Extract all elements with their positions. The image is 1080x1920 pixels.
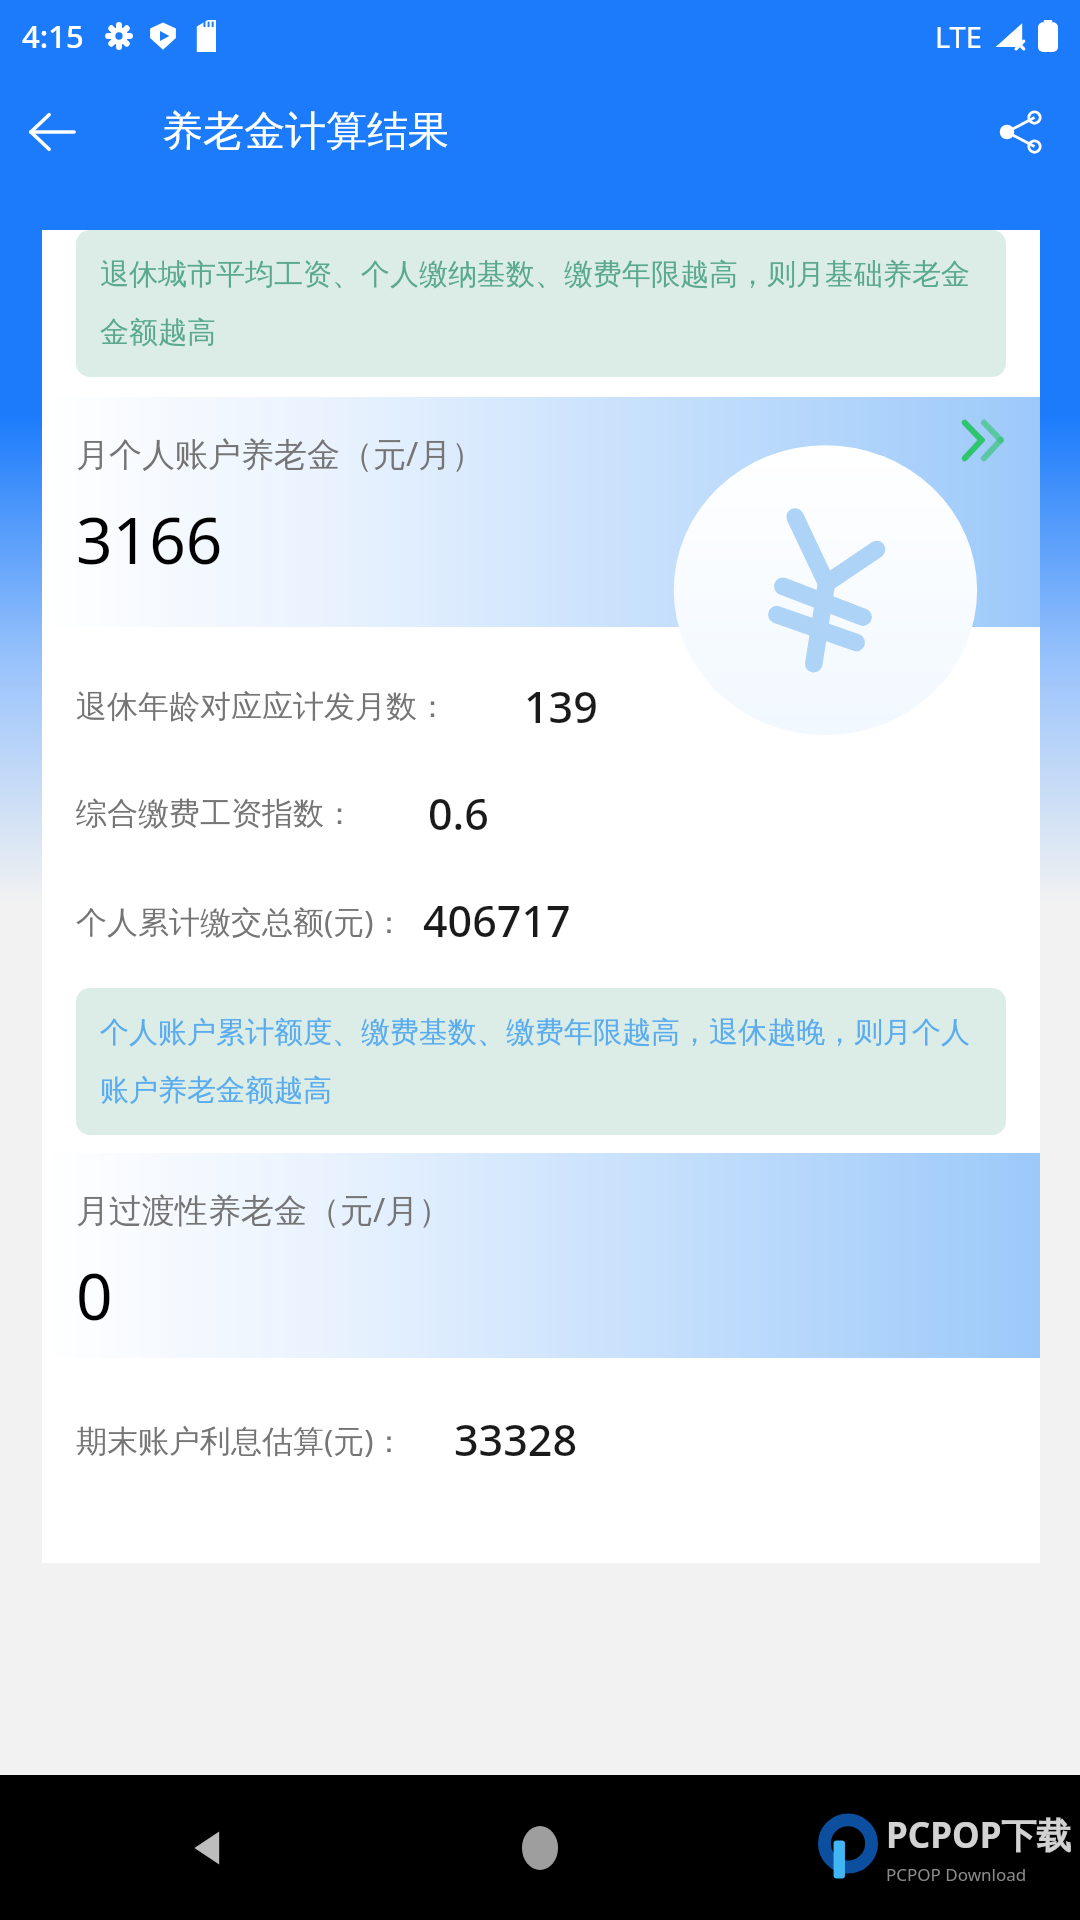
button[interactable]: 月过渡性养老金（元/月）: [42, 1153, 1040, 1358]
other: Details: [960, 417, 1008, 465]
button[interactable]: 综合缴费工资指数：: [42, 760, 1040, 867]
staticText: 月个人账户养老金（元/月）: [76, 431, 485, 476]
staticText: 406717: [423, 891, 571, 950]
button[interactable]: 退休城市平均工资、个人缴纳基数、缴费年限越高，则月基础养老金金额越高: [76, 230, 1006, 377]
staticText: 期末账户利息估算(元)：: [76, 1419, 405, 1461]
staticText: 0: [76, 1252, 113, 1339]
staticText: 退休年龄对应应计发月数：: [76, 687, 448, 726]
staticText: 4:15: [22, 15, 84, 57]
staticText: 3166: [76, 496, 223, 583]
button[interactable]: Back: [170, 1808, 250, 1888]
staticText: 33328: [454, 1410, 577, 1469]
staticText: PCPOP Download: [886, 1863, 1027, 1886]
staticText: 月过渡性养老金（元/月）: [76, 1187, 452, 1232]
staticText: 0.6: [428, 784, 489, 843]
staticText: 退休城市平均工资、个人缴纳基数、缴费年限越高，则月基础养老金金额越高: [100, 256, 982, 351]
staticText: LTE: [935, 17, 982, 56]
staticText: 139: [524, 677, 598, 736]
button[interactable]: Share: [980, 92, 1060, 172]
staticText: 综合缴费工资指数：: [76, 794, 355, 833]
button[interactable]: 个人累计缴交总额(元)：: [42, 867, 1040, 974]
button[interactable]: 期末账户利息估算(元)：: [42, 1386, 1040, 1493]
staticText: PCPOP下载: [886, 1811, 1072, 1859]
button[interactable]: 个人账户累计额度、缴费基数、缴费年限越高，退休越晚，则月个人账户养老金额越高: [76, 988, 1006, 1135]
staticText: 个人账户累计额度、缴费基数、缴费年限越高，退休越晚，则月个人账户养老金额越高: [100, 1014, 982, 1109]
staticText: 个人累计缴交总额(元)：: [76, 900, 405, 942]
button[interactable]: Home: [504, 1812, 576, 1884]
button[interactable]: 退休年龄对应应计发月数：: [42, 653, 1040, 760]
button[interactable]: Details: [42, 397, 1040, 627]
staticText: 养老金计算结果: [162, 106, 449, 158]
button[interactable]: Back: [14, 94, 90, 170]
